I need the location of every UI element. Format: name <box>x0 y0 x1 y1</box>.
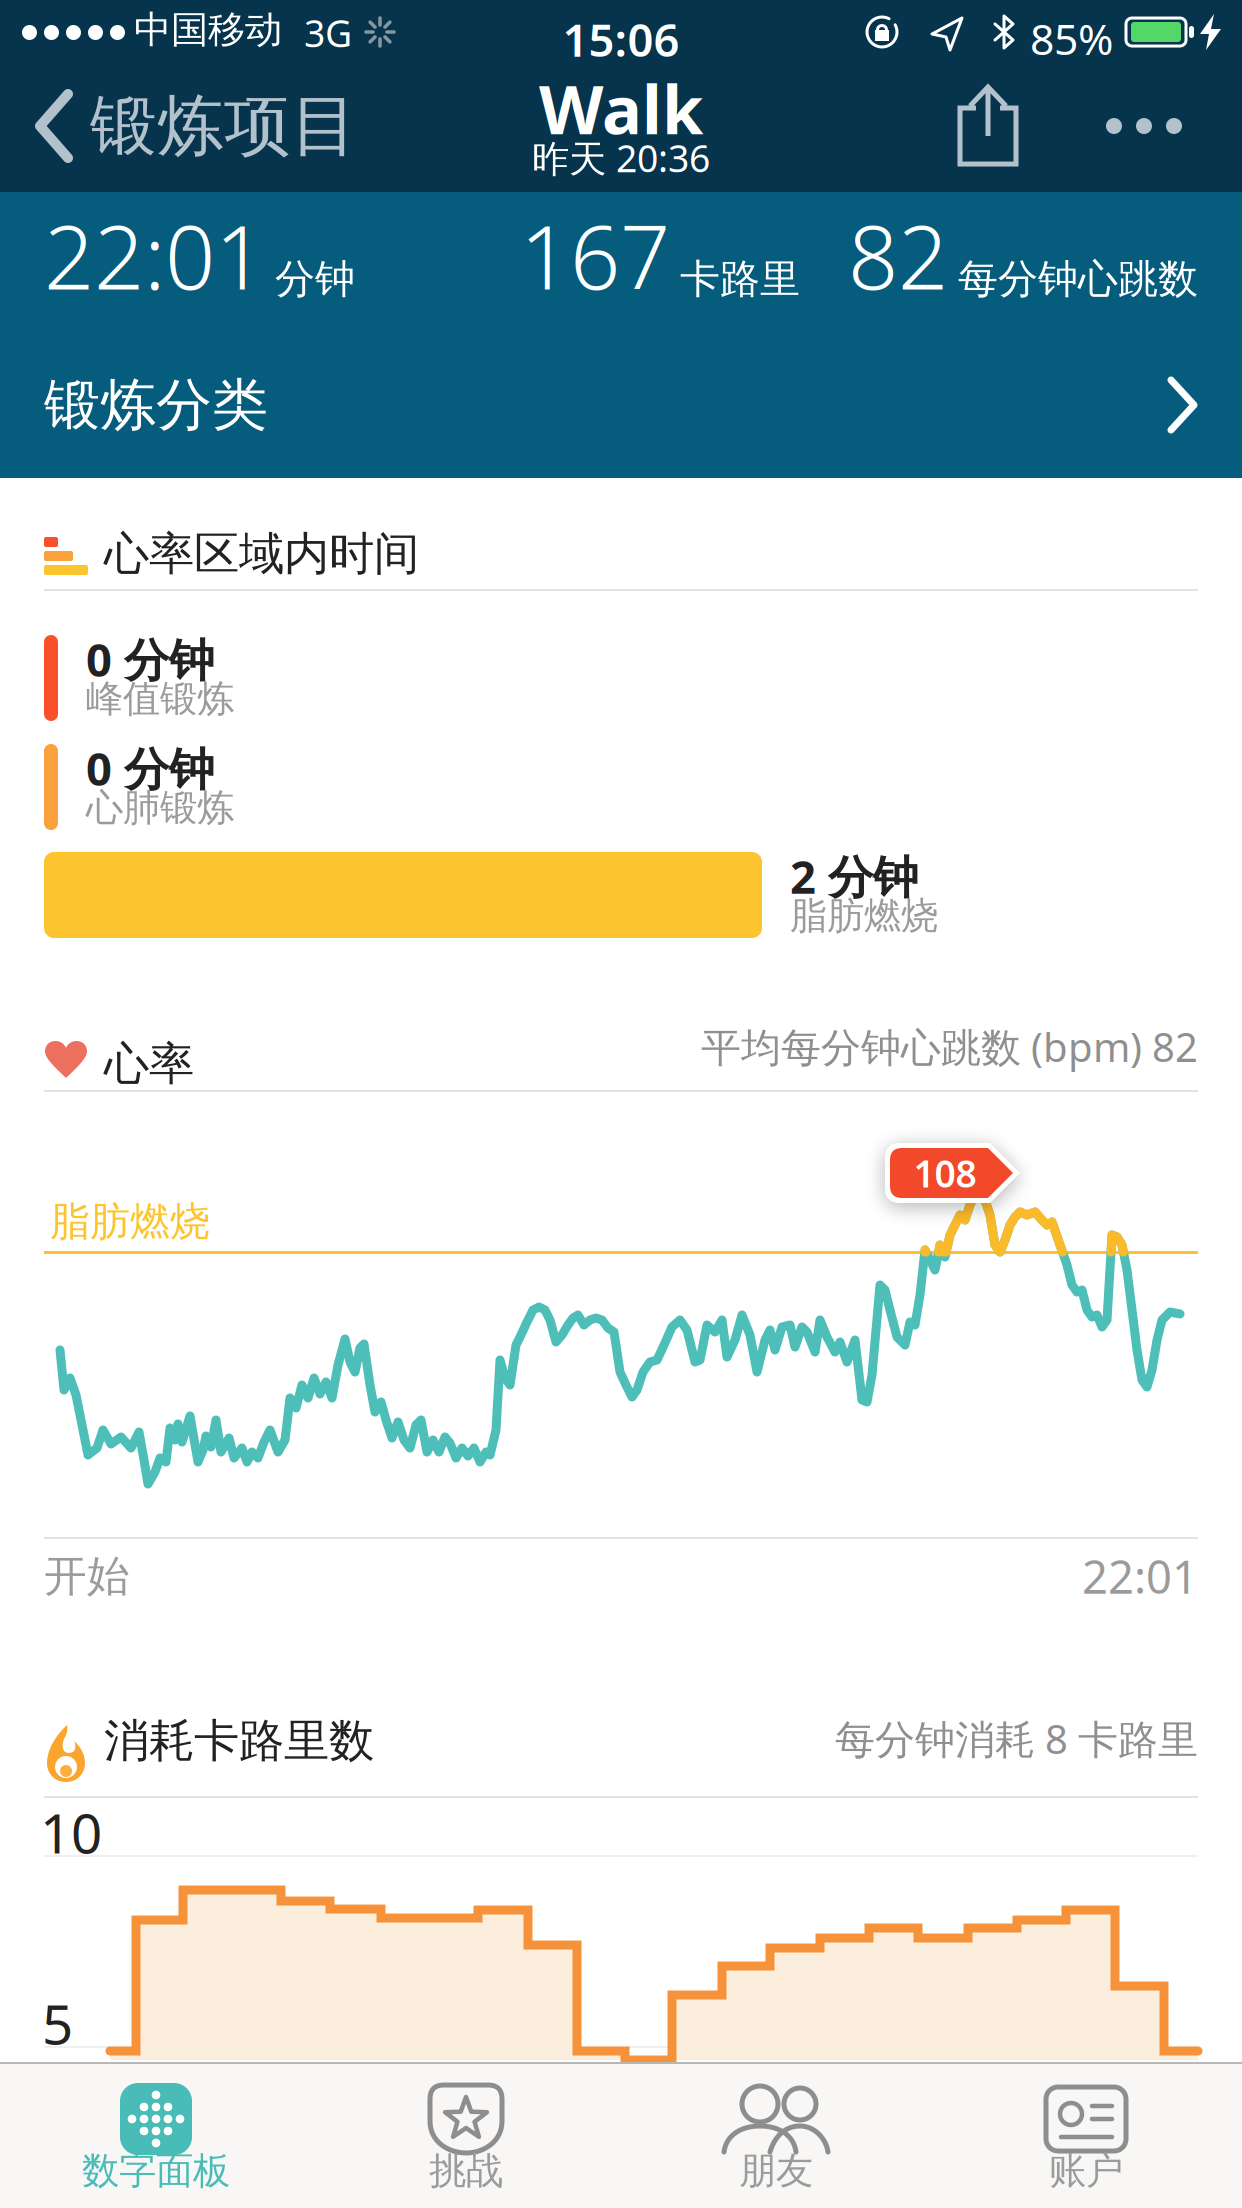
staticText: 82 <box>848 197 948 314</box>
staticText: 3G <box>304 8 352 58</box>
staticText: 每分钟心跳数 <box>958 255 1198 304</box>
button[interactable]: Share <box>938 60 1038 192</box>
staticText: 数字面板 <box>82 2148 230 2194</box>
staticText: 心肺锻炼 <box>86 785 234 831</box>
staticText: 心率区域内时间 <box>104 526 419 582</box>
staticText: 167 <box>520 197 670 314</box>
button[interactable]: 朋友 <box>621 2062 931 2208</box>
staticText: 挑战 <box>429 2148 503 2194</box>
staticText: 脂肪燃烧 <box>790 893 938 939</box>
button[interactable]: 锻炼分类 <box>0 341 1242 469</box>
staticText: 账户 <box>1049 2148 1123 2194</box>
button[interactable]: 挑战 <box>311 2062 621 2208</box>
staticText: 85% <box>1030 10 1113 67</box>
staticText: 锻炼项目 <box>90 85 358 167</box>
staticText: 0 分钟 <box>86 738 214 798</box>
staticText: 心率 <box>104 1036 194 1092</box>
staticText: 5 <box>42 1987 73 2060</box>
staticText: 锻炼分类 <box>44 371 268 439</box>
button[interactable]: 锻炼项目 <box>0 60 358 192</box>
staticText: 中国移动 <box>134 7 282 53</box>
staticText: 昨天 20:36 <box>532 133 710 183</box>
staticText: 10 <box>40 1796 102 1869</box>
staticText: 平均每分钟心跳数 (bpm) 82 <box>701 1020 1198 1073</box>
staticText: 22:01 <box>44 197 265 314</box>
staticText: 脂肪燃烧 <box>50 1197 210 1246</box>
staticText: 消耗卡路里数 <box>104 1713 374 1769</box>
staticText: 0 分钟 <box>86 629 214 689</box>
staticText: Walk <box>539 64 703 152</box>
staticText: 22:01 <box>1082 1546 1198 1606</box>
staticText: 分钟 <box>275 255 355 304</box>
staticText: 朋友 <box>739 2148 813 2194</box>
staticText: 峰值锻炼 <box>86 676 234 722</box>
button[interactable]: 数字面板 <box>1 2062 311 2208</box>
staticText: 2 分钟 <box>790 846 918 906</box>
button[interactable]: More <box>1090 60 1198 192</box>
staticText: 108 <box>913 1148 976 1198</box>
staticText: 每分钟消耗 8 卡路里 <box>835 1712 1198 1765</box>
staticText: 开始 <box>44 1550 130 1602</box>
staticText: 15:06 <box>562 9 679 69</box>
button[interactable]: 账户 <box>931 2062 1241 2208</box>
staticText: 卡路里 <box>680 255 800 304</box>
